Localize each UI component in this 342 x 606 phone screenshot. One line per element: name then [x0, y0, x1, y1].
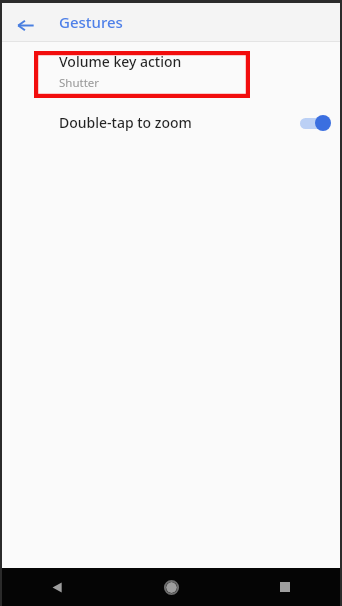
- other: Double-tap to zoom toggle: [299, 112, 331, 134]
- staticText: Gestures: [59, 12, 123, 32]
- button[interactable]: Back: [11, 11, 39, 39]
- staticText: Double-tap to zoom: [59, 113, 192, 132]
- button[interactable]: Recent apps: [228, 568, 342, 606]
- staticText: Volume key action: [59, 52, 182, 71]
- button[interactable]: Volume key action: [0, 42, 342, 100]
- staticText: Shutter: [59, 75, 100, 91]
- button[interactable]: Home: [114, 568, 228, 606]
- button[interactable]: Double-tap to zoom: [0, 100, 342, 145]
- button[interactable]: Back: [0, 568, 114, 606]
